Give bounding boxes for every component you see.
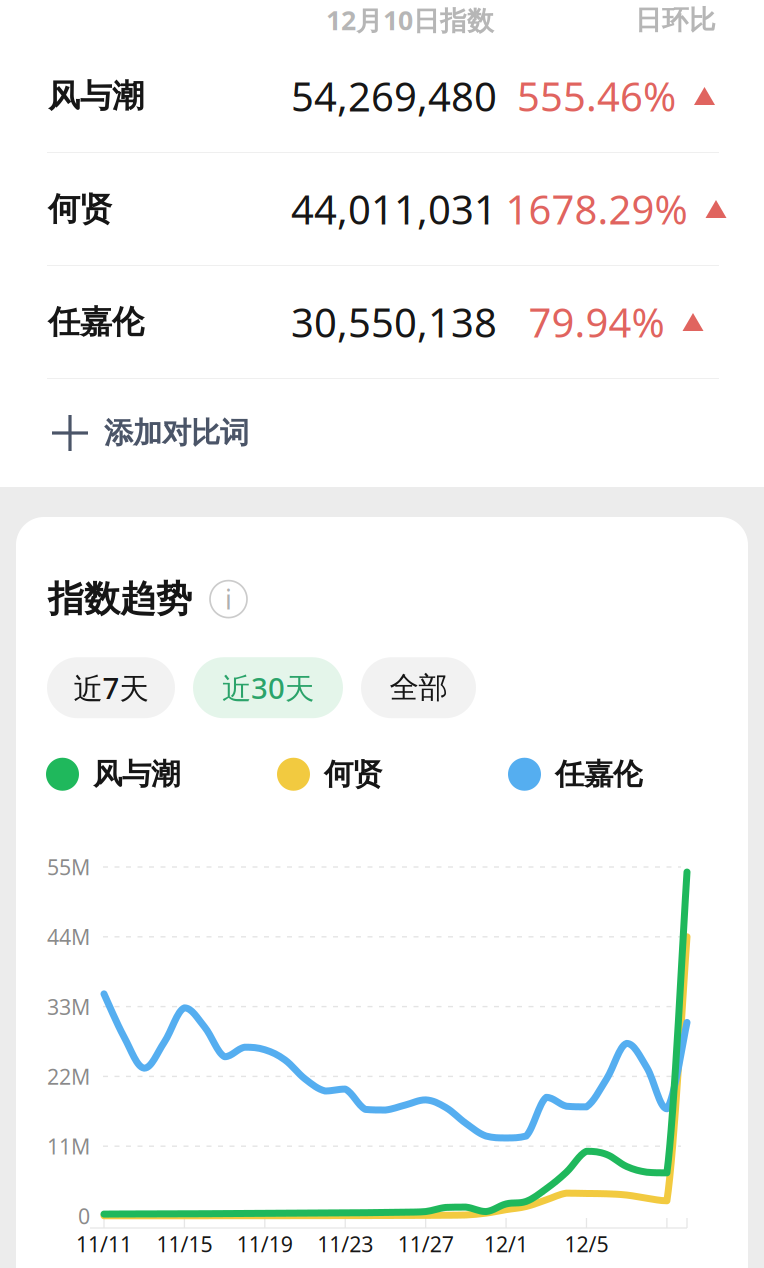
staticText: 12/5 — [564, 1230, 608, 1258]
staticText: 12月10日指数 — [326, 2, 494, 38]
staticText: 添加对比词 — [104, 415, 249, 451]
button[interactable]: 近7天 — [47, 657, 175, 718]
staticText: 1678.29% — [505, 182, 687, 235]
staticText: 30,550,138 — [291, 295, 497, 348]
button[interactable]: 全部 — [361, 657, 476, 718]
staticText: 11M — [47, 1132, 90, 1160]
button[interactable]: 任嘉伦 — [0, 266, 764, 378]
button[interactable]: 添加对比词 — [0, 379, 764, 487]
staticText: 44M — [47, 923, 90, 951]
button[interactable]: 风与潮 — [0, 40, 764, 152]
staticText: 11/27 — [398, 1230, 454, 1258]
staticText: 33M — [47, 992, 90, 1021]
staticText: 555.46% — [517, 69, 676, 122]
staticText: 何贤 — [48, 189, 112, 229]
staticText: 79.94% — [528, 295, 664, 348]
button[interactable]: 何贤 — [0, 153, 764, 265]
staticText: 风与潮 — [48, 76, 144, 116]
staticText: 全部 — [389, 670, 447, 706]
staticText: 0 — [78, 1202, 90, 1230]
staticText: 11/19 — [237, 1230, 293, 1258]
staticText: 风与潮 — [93, 756, 180, 792]
staticText: i — [225, 581, 232, 617]
staticText: 12/1 — [484, 1230, 528, 1258]
staticText: 11/23 — [317, 1230, 373, 1258]
staticText: 任嘉伦 — [555, 756, 642, 792]
staticText: 22M — [47, 1062, 90, 1090]
staticText: 何贤 — [324, 756, 382, 792]
staticText: 任嘉伦 — [48, 302, 144, 342]
staticText: 54,269,480 — [291, 69, 497, 122]
staticText: 55M — [47, 853, 90, 881]
staticText: 近7天 — [73, 668, 148, 707]
staticText: 近30天 — [222, 668, 314, 707]
staticText: 44,011,031 — [291, 182, 497, 235]
staticText: 日环比 — [635, 4, 716, 36]
button[interactable]: 近30天 — [193, 657, 343, 718]
staticText: 11/11 — [76, 1230, 132, 1258]
staticText: 指数趋势 — [48, 577, 192, 621]
staticText: 11/15 — [156, 1230, 212, 1258]
